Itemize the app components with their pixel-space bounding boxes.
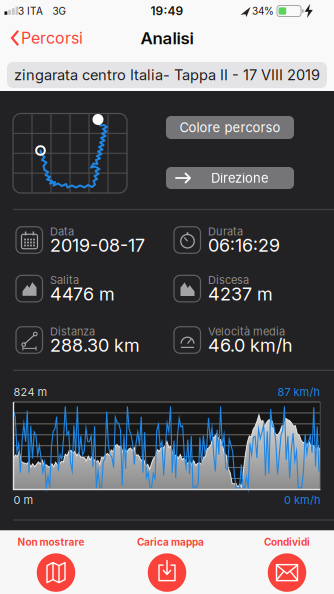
staticText: Direzione (211, 170, 269, 186)
staticText: Salita (50, 273, 79, 286)
button[interactable]: Colore percorso (166, 116, 294, 139)
staticText: 288.30 km (50, 335, 140, 356)
staticText: 2019-08-17 (50, 235, 145, 256)
button[interactable]: Back to Percorsi (0, 20, 110, 56)
staticText: 34% (252, 5, 274, 17)
staticText: 4237 m (208, 283, 273, 304)
staticText: 06:16:29 (208, 235, 280, 256)
staticText: 3G (52, 5, 65, 17)
staticText: Non mostrare (17, 536, 84, 548)
staticText: Durata (208, 225, 243, 238)
button[interactable]: Route name (7, 62, 327, 88)
button[interactable]: Direzione (166, 167, 294, 189)
staticText: 3 ITA (18, 5, 43, 17)
staticText: Carica mappa (137, 536, 204, 548)
staticText: 0 m (13, 493, 33, 506)
button[interactable]: Condividi (235, 530, 334, 594)
staticText: 46.0 km/h (208, 335, 292, 356)
staticText: 824 m (13, 385, 47, 398)
staticText: Data (50, 225, 74, 238)
staticText: Condividi (264, 536, 310, 548)
button[interactable]: Non mostrare (4, 530, 108, 594)
staticText: 0 km/h (284, 493, 321, 506)
staticText: Velocità media (208, 325, 285, 338)
staticText: 4476 m (50, 283, 115, 304)
button[interactable]: Carica mappa (115, 530, 219, 594)
staticText: 19:49 (150, 4, 183, 18)
staticText: zingarata centro Italia- Tappa II - 17 V… (14, 66, 320, 84)
staticText: Colore percorso (179, 120, 280, 135)
staticText: Analisi (140, 28, 193, 48)
staticText: Percorsi (21, 29, 83, 47)
staticText: Distanza (50, 325, 95, 338)
staticText: 87 km/h (277, 385, 320, 398)
staticText: Discesa (208, 273, 249, 286)
